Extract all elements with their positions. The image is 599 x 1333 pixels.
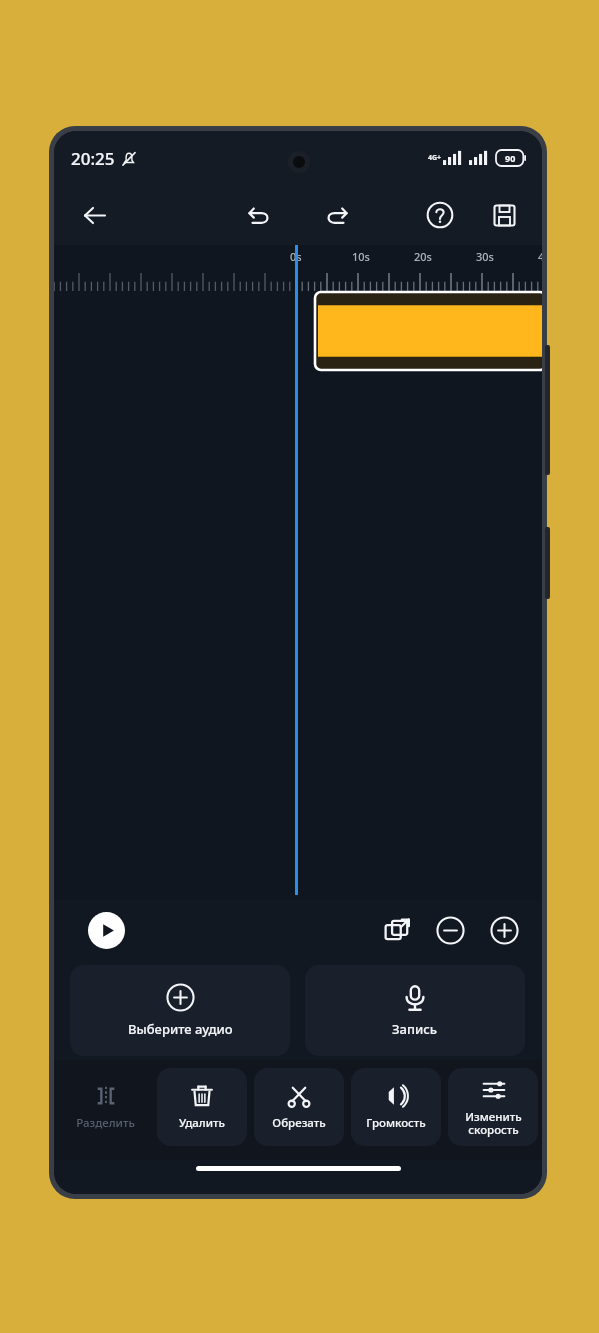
staticText: 20:25 [71,147,115,170]
staticText: Разделить [76,1115,135,1131]
staticText: 20s [414,249,432,264]
button[interactable]: Undo [237,193,281,237]
button[interactable]: Save [482,193,526,237]
staticText: Обрезать [272,1115,326,1131]
staticText: Запись [392,1020,438,1038]
button[interactable]: Redo [315,193,359,237]
staticText: 90 [505,152,516,164]
button[interactable]: Fullscreen [377,910,417,950]
staticText: 30s [476,249,494,264]
staticText: Удалить [179,1115,225,1131]
button[interactable]: Обрезать [254,1068,344,1146]
staticText: 4 [538,249,542,264]
staticText: 0s [290,249,302,264]
button[interactable]: Help [418,193,462,237]
staticText: Выберите аудио [128,1020,233,1038]
button[interactable]: Громкость [351,1068,441,1146]
button[interactable]: Zoom out [430,910,470,950]
staticText: 4G+ [428,153,442,163]
button[interactable]: Удалить [157,1068,247,1146]
staticText: Громкость [366,1115,426,1131]
button[interactable]: Запись [305,965,525,1056]
button[interactable]: Play [86,910,126,950]
button[interactable]: Изменить скорость [448,1068,538,1146]
button[interactable]: Выберите аудио [70,965,290,1056]
button[interactable]: Разделить [60,1068,150,1146]
button[interactable]: Back [72,193,116,237]
staticText: 10s [352,249,370,264]
staticText: Изменить скорость [465,1109,522,1138]
button[interactable] [315,292,542,370]
button[interactable]: Zoom in [484,910,524,950]
